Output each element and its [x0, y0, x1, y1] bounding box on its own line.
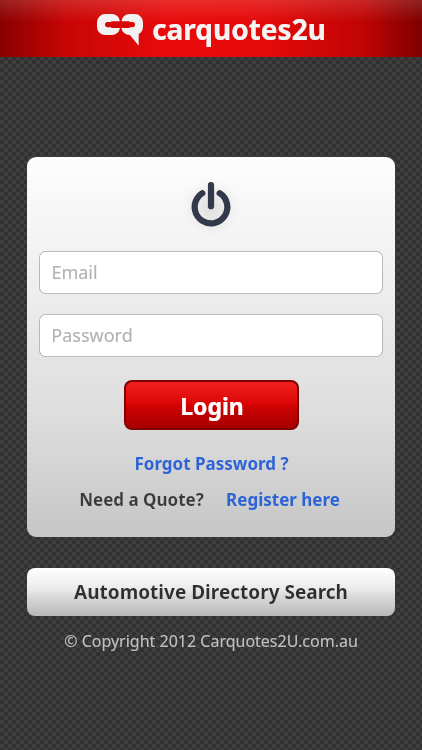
button[interactable]: Email	[39, 251, 383, 294]
button[interactable]: Password	[39, 314, 383, 357]
staticText: Login	[180, 390, 244, 421]
staticText: Need a Quote?	[79, 488, 204, 511]
staticText: Register here	[226, 488, 340, 511]
staticText: Forgot Password ?	[134, 452, 289, 475]
button[interactable]: Login	[126, 382, 297, 428]
button[interactable]: Register here	[222, 486, 344, 513]
button[interactable]: Automotive Directory Search	[27, 568, 395, 616]
staticText: © Copyright 2012 Carquotes2U.com.au	[64, 630, 358, 652]
staticText: Password	[51, 323, 133, 348]
staticText: Email	[51, 260, 98, 285]
other: Power	[188, 183, 234, 229]
staticText: carquotes2u	[152, 10, 326, 48]
button[interactable]: Forgot Password ?	[128, 450, 295, 477]
staticText: Automotive Directory Search	[74, 579, 348, 605]
